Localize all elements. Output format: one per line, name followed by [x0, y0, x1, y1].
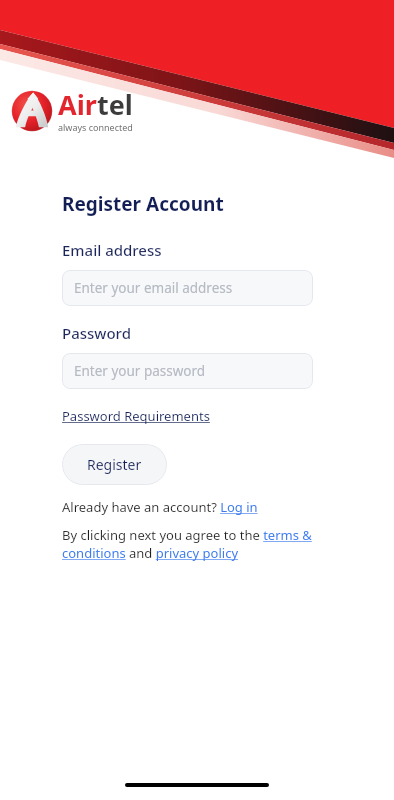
- staticText: Password: [62, 323, 131, 343]
- staticText: Enter your password: [74, 362, 206, 380]
- staticText: always connected: [58, 121, 133, 133]
- staticText: By clicking next you agree to the terms …: [62, 526, 313, 562]
- staticText: Enter your email address: [74, 279, 233, 297]
- staticText: Register Account: [62, 191, 224, 217]
- button[interactable]: By clicking next you agree to the terms …: [62, 526, 313, 562]
- button[interactable]: Enter your email address: [62, 270, 313, 306]
- button[interactable]: Register: [62, 444, 167, 485]
- button[interactable]: Password Requirements: [62, 407, 210, 425]
- button[interactable]: Enter your password: [62, 353, 313, 389]
- staticText: Register: [87, 455, 142, 474]
- staticText: Already have an account? Log in: [62, 498, 258, 516]
- other: Airtel logo: [10, 89, 54, 133]
- button[interactable]: Already have an account? Log in: [62, 498, 258, 516]
- staticText: Password Requirements: [62, 407, 210, 425]
- staticText: Air: [58, 86, 97, 123]
- staticText: Email address: [62, 240, 162, 260]
- staticText: tel: [97, 86, 133, 123]
